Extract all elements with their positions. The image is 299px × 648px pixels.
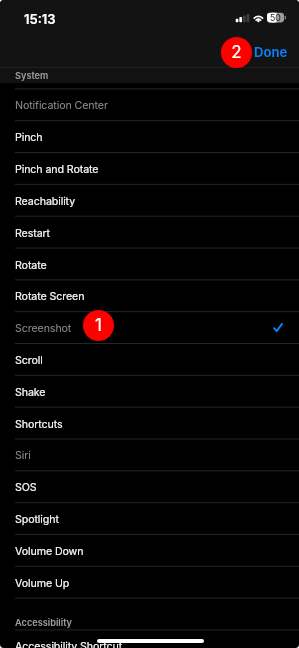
- staticText: 1: [95, 315, 102, 336]
- staticText: Screenshot: [15, 322, 72, 335]
- staticText: System: [15, 70, 49, 81]
- staticText: Rotate: [15, 259, 47, 272]
- staticText: 15:13: [24, 11, 56, 27]
- staticText: Shortcuts: [15, 418, 63, 431]
- staticText: Restart: [15, 227, 50, 240]
- staticText: Done: [254, 44, 288, 60]
- staticText: Shake: [15, 386, 46, 399]
- staticText: Accessibility Shortcut: [15, 640, 123, 648]
- button[interactable]: Scroll: [0, 344, 299, 375]
- staticText: Rotate Screen: [15, 290, 85, 303]
- staticText: SOS: [15, 481, 37, 494]
- button[interactable]: Spotlight: [0, 503, 299, 534]
- staticText: Notification Center: [15, 99, 108, 112]
- button[interactable]: Rotate Screen: [0, 280, 299, 311]
- button[interactable]: Accessibility Shortcut: [0, 630, 299, 648]
- button[interactable]: Rotate: [0, 249, 299, 280]
- button[interactable]: Screenshot: [0, 312, 299, 343]
- button[interactable]: SOS: [0, 471, 299, 502]
- staticText: Reachability: [15, 195, 76, 208]
- button[interactable]: Shake: [0, 376, 299, 407]
- staticText: Pinch and Rotate: [15, 163, 99, 176]
- button[interactable]: Pinch and Rotate: [0, 153, 299, 184]
- staticText: 2: [231, 42, 242, 63]
- staticText: 50: [270, 13, 281, 23]
- button[interactable]: Restart: [0, 217, 299, 248]
- staticText: Scroll: [15, 354, 43, 367]
- button[interactable]: Pinch: [0, 121, 299, 152]
- button[interactable]: Notification Center: [0, 89, 299, 120]
- staticText: Siri: [15, 449, 31, 462]
- button[interactable]: Siri: [0, 439, 299, 470]
- staticText: Volume Up: [15, 577, 70, 590]
- staticText: Spotlight: [15, 513, 59, 526]
- button[interactable]: Volume Down: [0, 535, 299, 566]
- staticText: Pinch: [15, 131, 43, 144]
- button[interactable]: Reachability: [0, 185, 299, 216]
- button[interactable]: Shortcuts: [0, 408, 299, 439]
- staticText: Accessibility: [15, 617, 72, 628]
- button[interactable]: Volume Up: [0, 567, 299, 598]
- button[interactable]: Done: [248, 40, 294, 64]
- staticText: Volume Down: [15, 545, 84, 558]
